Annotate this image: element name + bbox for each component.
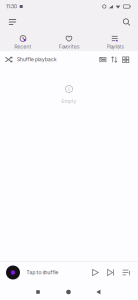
button[interactable]: Navigation menu	[2, 13, 23, 31]
button[interactable]: Queue	[118, 261, 134, 284]
button[interactable]: Sort	[108, 51, 120, 68]
button[interactable]: Back	[84, 284, 113, 300]
button[interactable]: Track info	[97, 51, 108, 68]
staticText: Playlists	[106, 44, 123, 50]
button[interactable]: Change view	[120, 51, 131, 68]
staticText: Favorites	[59, 44, 79, 50]
button[interactable]: Search	[116, 13, 137, 31]
button[interactable]: Home	[53, 284, 84, 300]
button[interactable]: Play	[87, 261, 103, 284]
staticText: Recent	[14, 44, 31, 50]
staticText: Shuffle playback	[17, 56, 57, 62]
button[interactable]: Tap to shuffle	[0, 261, 58, 284]
staticText: Tap to shuffle	[26, 269, 58, 275]
button[interactable]: Next track	[103, 261, 118, 284]
staticText: Empty	[61, 98, 76, 104]
staticText: 11:30	[6, 3, 17, 9]
button[interactable]: Favorites	[46, 31, 92, 51]
button[interactable]: Playlists	[92, 31, 138, 51]
button[interactable]: Shuffle playback	[0, 51, 61, 68]
button[interactable]: Recent	[0, 31, 46, 51]
button[interactable]: Recent apps	[23, 284, 53, 300]
